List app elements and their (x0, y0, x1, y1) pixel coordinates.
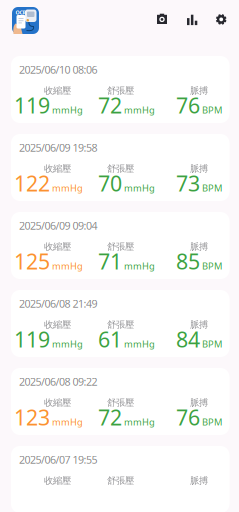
staticText: 119 (14, 91, 50, 119)
staticText: 2025/06/08 09:22 (19, 374, 97, 389)
staticText: BPM (202, 338, 222, 350)
staticText: 85 (176, 247, 200, 275)
staticText: 72 (98, 91, 122, 119)
button[interactable]: 2025/06/09 19:58 (11, 134, 229, 201)
staticText: 脈搏 (190, 319, 208, 330)
staticText: 收縮壓 (44, 319, 71, 330)
staticText: 脈搏 (190, 475, 208, 486)
staticText: 收縮壓 (44, 241, 71, 252)
staticText: 收縮壓 (44, 475, 71, 486)
button[interactable]: Statistics (180, 8, 204, 32)
staticText: mmHg (124, 260, 155, 272)
button[interactable]: Settings (209, 7, 233, 32)
staticText: 61 (98, 325, 122, 353)
staticText: 舒張壓 (107, 85, 134, 96)
staticText: 收縮壓 (44, 85, 71, 96)
button[interactable]: Take photo (150, 7, 174, 31)
button[interactable]: 2025/06/08 09:22 (11, 368, 229, 435)
staticText: 84 (176, 325, 200, 353)
staticText: 122 (14, 169, 50, 197)
staticText: 2025/06/09 09:04 (19, 218, 97, 233)
staticText: 2025/06/07 19:55 (19, 452, 97, 467)
staticText: 舒張壓 (107, 319, 134, 330)
staticText: BPM (202, 260, 222, 272)
staticText: 舒張壓 (107, 397, 134, 408)
staticText: 76 (176, 91, 200, 119)
staticText: 脈搏 (190, 85, 208, 96)
staticText: 123 (14, 403, 50, 431)
button[interactable]: 2025/06/10 08:06 (11, 56, 229, 123)
staticText: mmHg (52, 182, 83, 194)
staticText: BPM (202, 416, 222, 428)
staticText: 舒張壓 (107, 241, 134, 252)
staticText: 脈搏 (190, 241, 208, 252)
staticText: 脈搏 (190, 163, 208, 174)
staticText: 73 (176, 169, 200, 197)
staticText: mmHg (124, 416, 155, 428)
staticText: BPM (202, 104, 222, 116)
button[interactable]: 2025/06/08 21:49 (11, 290, 229, 357)
staticText: mmHg (124, 338, 155, 350)
staticText: mmHg (52, 260, 83, 272)
staticText: 2025/06/10 08:06 (19, 62, 97, 77)
button[interactable]: 2025/06/07 19:55 (11, 446, 229, 512)
staticText: 70 (98, 169, 122, 197)
staticText: 76 (176, 403, 200, 431)
staticText: 72 (98, 403, 122, 431)
button[interactable]: App info (12, 7, 39, 34)
staticText: 舒張壓 (107, 163, 134, 174)
button[interactable]: 2025/06/09 09:04 (11, 212, 229, 279)
staticText: mmHg (52, 416, 83, 428)
staticText: 脈搏 (190, 397, 208, 408)
staticText: mmHg (124, 104, 155, 116)
staticText: mmHg (124, 182, 155, 194)
staticText: 2025/06/08 21:49 (19, 296, 97, 311)
staticText: BPM (202, 182, 222, 194)
staticText: mmHg (52, 338, 83, 350)
staticText: 收縮壓 (44, 163, 71, 174)
staticText: 舒張壓 (107, 475, 134, 486)
staticText: 71 (98, 247, 122, 275)
staticText: 125 (14, 247, 50, 275)
staticText: 119 (14, 325, 50, 353)
staticText: OCR (15, 9, 25, 16)
staticText: mmHg (52, 104, 83, 116)
staticText: 2025/06/09 19:58 (19, 140, 97, 155)
staticText: 收縮壓 (44, 397, 71, 408)
